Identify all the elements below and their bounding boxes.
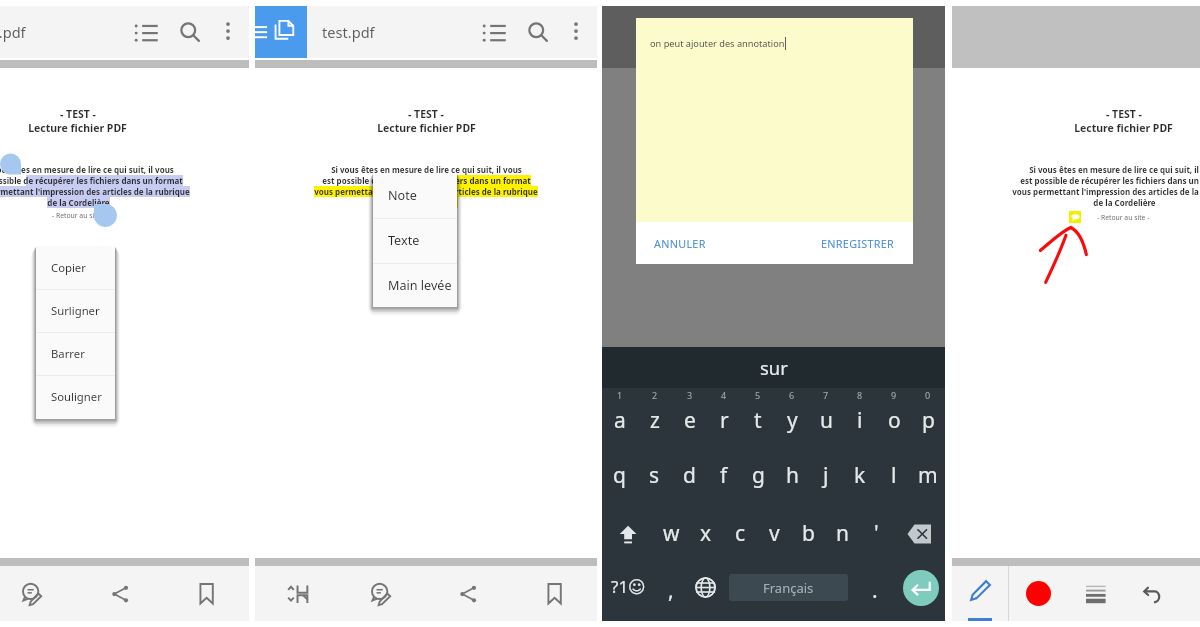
button[interactable]: 8 [843, 388, 877, 447]
staticText: 7 [823, 389, 829, 401]
button[interactable]: b [791, 505, 825, 563]
staticText: 5 [755, 389, 761, 401]
button[interactable]: Colour red [1009, 566, 1067, 621]
button[interactable]: Backspace [893, 505, 945, 563]
button[interactable]: ENREGISTRER [821, 236, 895, 251]
button[interactable]: Search [515, 6, 560, 58]
button[interactable]: 6 [775, 388, 809, 447]
button[interactable]: Bookmark [511, 566, 597, 621]
button[interactable]: Texte [373, 218, 457, 263]
staticText: n [836, 519, 849, 548]
button[interactable]: n [825, 505, 859, 563]
button[interactable]: 3 [672, 388, 707, 447]
button[interactable]: ?1☺ [602, 563, 654, 612]
staticText: - Retour au site - [400, 211, 453, 220]
button[interactable]: x [689, 505, 723, 563]
button[interactable]: Souligner [36, 375, 115, 418]
button[interactable]: Copier [36, 246, 115, 289]
button[interactable]: v [757, 505, 791, 563]
staticText: - TEST - [1106, 107, 1142, 121]
button[interactable]: l [877, 447, 911, 505]
staticText: Main levée [388, 277, 452, 294]
staticText: Lecture fichier PDF [1074, 121, 1173, 135]
staticText: sur [760, 355, 788, 380]
button[interactable]: Bookmark [163, 566, 249, 621]
button[interactable]: 5 [741, 388, 775, 447]
staticText: a [614, 406, 626, 435]
button[interactable]: Share [77, 566, 163, 621]
button[interactable]: . [854, 563, 896, 612]
staticText: g [752, 461, 765, 490]
staticText: Texte [388, 232, 420, 249]
button[interactable]: j [809, 447, 843, 505]
button[interactable]: Enter [896, 563, 945, 612]
staticText: y [787, 406, 798, 435]
staticText: w [663, 519, 680, 548]
staticText: 1 [617, 389, 623, 401]
button[interactable]: Share [425, 566, 511, 621]
button[interactable]: Note annotation [1069, 211, 1081, 223]
staticText: u [820, 406, 833, 435]
staticText: j [823, 461, 829, 490]
staticText: est possible de récupérer les fichiers d… [322, 175, 531, 186]
button[interactable]: Barrer [36, 332, 115, 375]
staticText: Copier [51, 260, 86, 275]
button[interactable]: Shift [602, 505, 654, 563]
button[interactable]: c [723, 505, 757, 563]
button[interactable]: 9 [877, 388, 911, 447]
button[interactable]: More options [560, 6, 597, 58]
staticText: - Retour au site - [52, 211, 105, 220]
staticText: s [649, 461, 660, 490]
button[interactable]: k [843, 447, 877, 505]
staticText: vous permettant l'impression des article… [314, 186, 538, 197]
staticText: de la Cordelière [1093, 197, 1156, 208]
staticText: f [720, 461, 728, 490]
button[interactable]: Stroke width [1067, 566, 1124, 621]
button[interactable]: q [602, 447, 637, 505]
staticText: z [650, 406, 660, 435]
staticText: 0 [925, 389, 931, 401]
button[interactable]: ' [859, 505, 893, 563]
staticText: vous permettant l'impression des article… [0, 186, 190, 197]
button[interactable]: Annotate [0, 566, 77, 621]
button[interactable]: s [637, 447, 672, 505]
button[interactable]: Undo [1124, 566, 1181, 621]
staticText: o [888, 406, 901, 435]
button[interactable]: 7 [809, 388, 843, 447]
button[interactable]: Annotate [340, 566, 425, 621]
button[interactable]: sur [602, 347, 945, 388]
button[interactable]: m [911, 447, 945, 505]
staticText: ANNULER [654, 236, 706, 251]
button[interactable]: Pen [952, 566, 1008, 621]
staticText: Lecture fichier PDF [28, 121, 127, 135]
staticText: Si vous êtes en mesure de lire ce qui su… [331, 164, 522, 175]
button[interactable]: Search [167, 6, 212, 58]
staticText: 6 [789, 389, 795, 401]
button[interactable]: 0 [911, 388, 945, 447]
button[interactable]: Outline [470, 6, 515, 58]
button[interactable]: h [775, 447, 809, 505]
button[interactable]: Change language [688, 563, 723, 612]
button[interactable]: 4 [707, 388, 741, 447]
button[interactable]: f [707, 447, 741, 505]
button[interactable]: Main levée [373, 263, 457, 307]
button[interactable]: , [654, 563, 688, 612]
button[interactable]: 1 [602, 388, 637, 447]
button[interactable]: Note [373, 173, 457, 218]
button[interactable]: w [654, 505, 689, 563]
button[interactable]: More options [212, 6, 249, 58]
staticText: 3 [687, 389, 693, 401]
button[interactable]: Outline [122, 6, 167, 58]
staticText: l [891, 461, 897, 490]
staticText: t [754, 406, 762, 435]
staticText: q [613, 461, 626, 490]
button[interactable]: Documents [255, 6, 307, 58]
button[interactable]: 2 [637, 388, 672, 447]
button[interactable]: Fit page [255, 566, 340, 621]
staticText: k [854, 461, 866, 490]
button[interactable]: Français [723, 563, 854, 612]
button[interactable]: g [741, 447, 775, 505]
button[interactable]: d [672, 447, 707, 505]
button[interactable]: Surligner [36, 289, 115, 332]
button[interactable]: ANNULER [654, 236, 706, 251]
